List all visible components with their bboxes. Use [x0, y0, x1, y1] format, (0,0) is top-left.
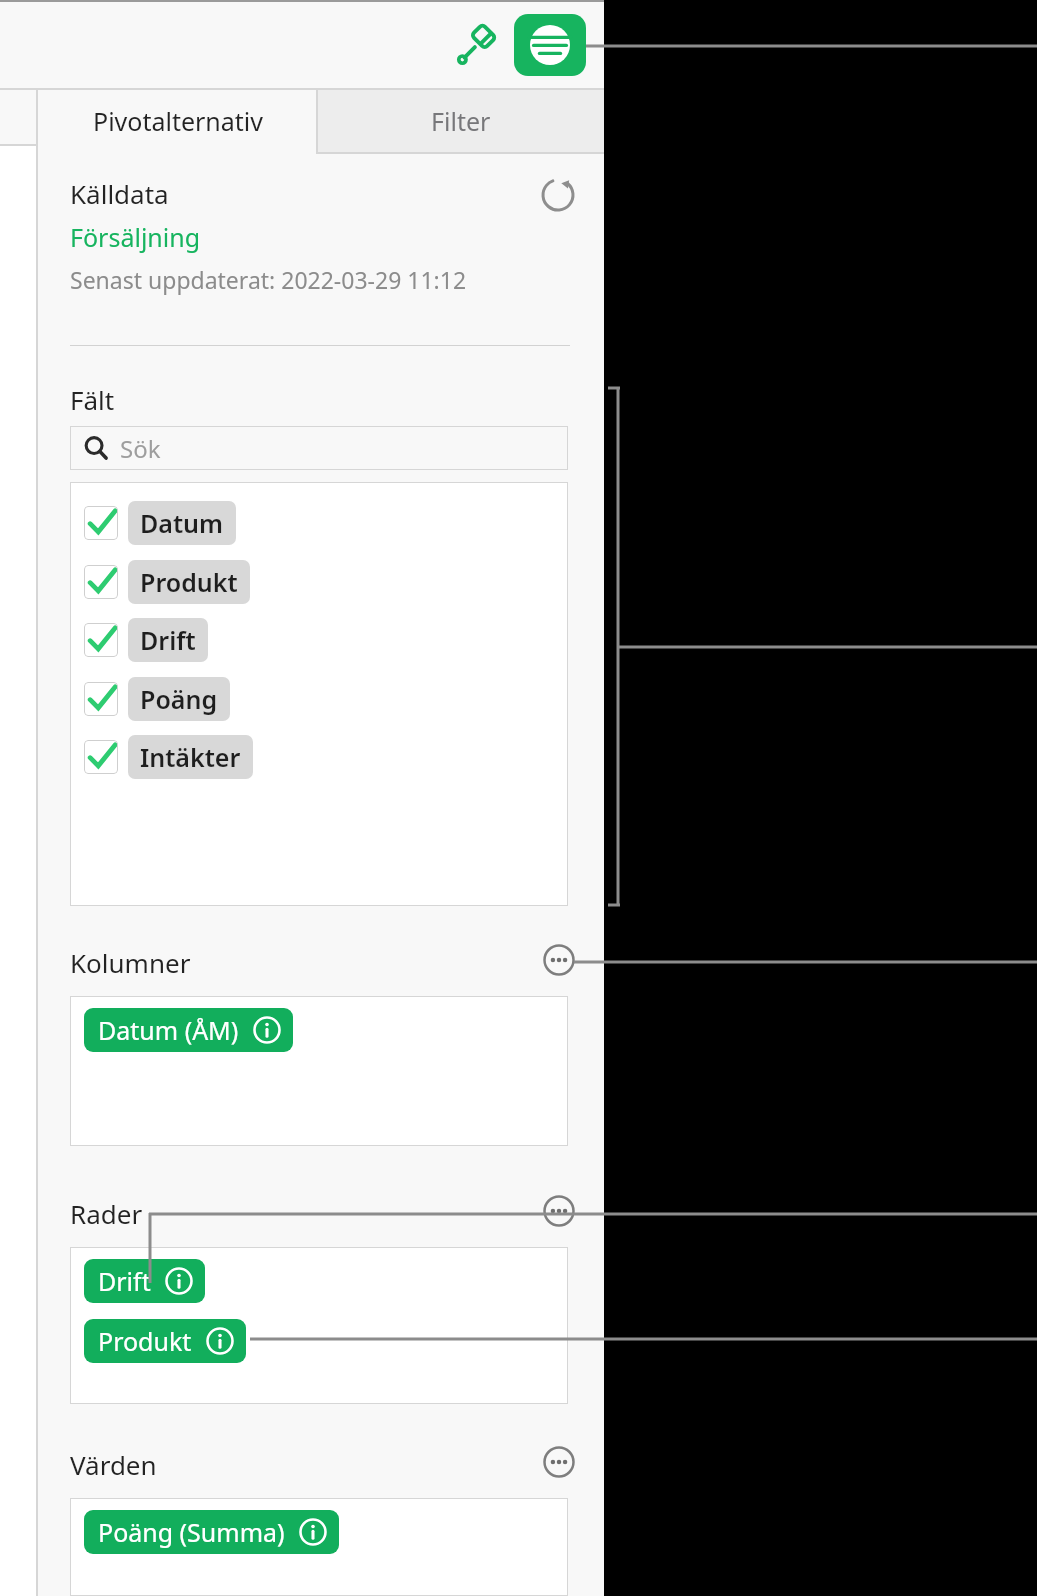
- button[interactable]: Datum: [84, 500, 236, 546]
- button[interactable]: Refresh: [535, 172, 581, 218]
- staticText: Sök: [120, 432, 161, 465]
- button[interactable]: Drift: [84, 617, 208, 663]
- staticText: Pivotalternativ: [93, 104, 264, 138]
- staticText: Drift: [98, 1264, 151, 1298]
- button[interactable]: Intäkter: [84, 734, 253, 780]
- staticText: Värden: [70, 1447, 157, 1482]
- staticText: Källdata: [70, 176, 169, 211]
- button[interactable]: Produkt: [84, 1319, 246, 1363]
- button[interactable]: [70, 996, 568, 1146]
- staticText: Drift: [140, 623, 196, 657]
- staticText: Poäng: [140, 682, 218, 716]
- staticText: Rader: [70, 1196, 143, 1231]
- button[interactable]: Pivot options: [514, 14, 586, 76]
- staticText: Kolumner: [70, 945, 191, 980]
- staticText: Produkt: [140, 565, 238, 599]
- staticText: Fält: [70, 382, 115, 417]
- button[interactable]: [70, 1498, 568, 1596]
- staticText: Produkt: [98, 1324, 192, 1358]
- staticText: Filter: [431, 104, 491, 138]
- button[interactable]: Drift: [84, 1259, 205, 1303]
- button[interactable]: Försäljning: [70, 220, 201, 254]
- staticText: Senast uppdaterat: 2022-03-29 11:12: [70, 264, 467, 295]
- button[interactable]: Värden options: [540, 1443, 578, 1481]
- button[interactable]: Rader options: [540, 1192, 578, 1230]
- button[interactable]: Poäng (Summa): [84, 1510, 339, 1554]
- staticText: Datum (ÅM): [98, 1013, 239, 1047]
- button[interactable]: Pivotalternativ: [38, 88, 318, 154]
- button[interactable]: Format: [452, 18, 504, 70]
- staticText: Intäkter: [140, 740, 241, 774]
- button[interactable]: Datum (ÅM): [84, 1008, 293, 1052]
- button[interactable]: Källdata: [70, 176, 169, 211]
- button[interactable]: Produkt: [84, 559, 250, 605]
- button[interactable]: [70, 1247, 568, 1404]
- button[interactable]: Filter: [318, 88, 604, 154]
- button[interactable]: Poäng: [84, 676, 230, 722]
- button[interactable]: Sök: [70, 426, 568, 470]
- staticText: Försäljning: [70, 220, 201, 254]
- button[interactable]: Kolumner options: [540, 941, 578, 979]
- staticText: Poäng (Summa): [98, 1515, 285, 1549]
- staticText: Datum: [140, 506, 224, 540]
